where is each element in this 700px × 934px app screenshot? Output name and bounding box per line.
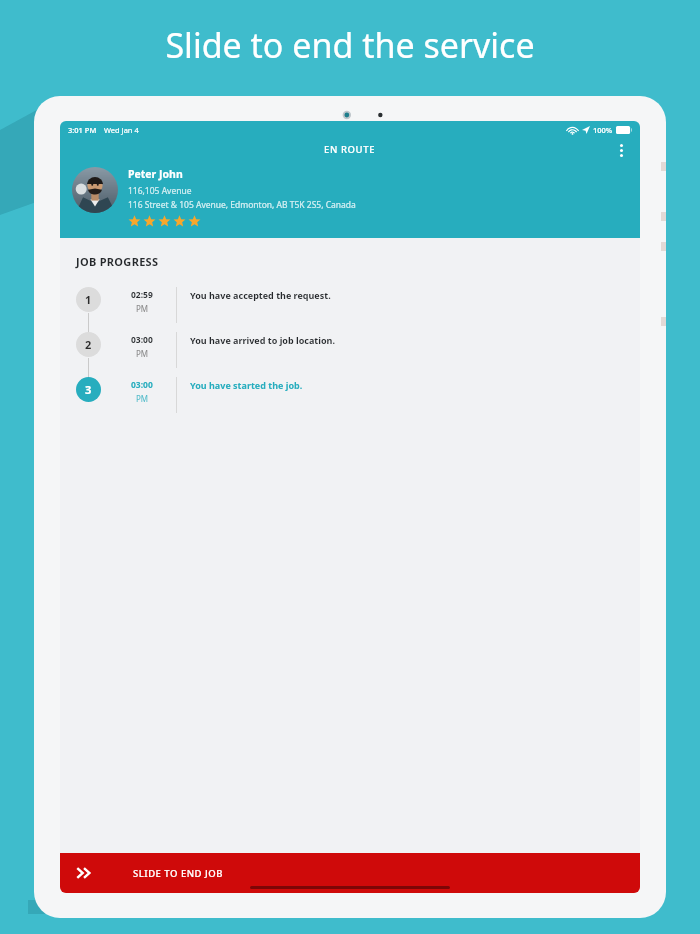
staticText: 3:01 PM (68, 125, 97, 135)
staticText: 116,105 Avenue (128, 185, 192, 197)
staticText: 03:00 (131, 334, 153, 346)
button[interactable]: More options (610, 139, 632, 161)
staticText: SLIDE TO END JOB (133, 867, 223, 880)
staticText: JOB PROGRESS (76, 254, 159, 269)
staticText: Peter John (128, 167, 183, 181)
button[interactable]: Peter John (72, 167, 628, 228)
staticText: 3 (85, 382, 92, 397)
button[interactable]: Slide (60, 853, 640, 893)
button[interactable]: 3 (76, 377, 640, 422)
staticText: Slide to end the service (165, 22, 535, 68)
staticText: You have accepted the request. (190, 289, 331, 301)
button[interactable]: 2 (76, 332, 640, 377)
staticText: Wed Jan 4 (104, 125, 139, 135)
staticText: PM (136, 303, 149, 314)
staticText: 02:59 (131, 289, 153, 301)
staticText: 100% (593, 125, 613, 135)
staticText: PM (136, 393, 149, 404)
other: Slide (74, 863, 94, 883)
staticText: 03:00 (131, 379, 153, 391)
staticText: You have arrived to job location. (190, 334, 335, 346)
staticText: You have started the job. (190, 379, 303, 391)
staticText: 116 Street & 105 Avenue, Edmonton, AB T5… (128, 199, 356, 211)
button[interactable]: 1 (76, 287, 640, 332)
staticText: 2 (85, 337, 92, 352)
staticText: PM (136, 348, 149, 359)
staticText: EN ROUTE (324, 143, 376, 156)
staticText: 1 (85, 292, 92, 307)
